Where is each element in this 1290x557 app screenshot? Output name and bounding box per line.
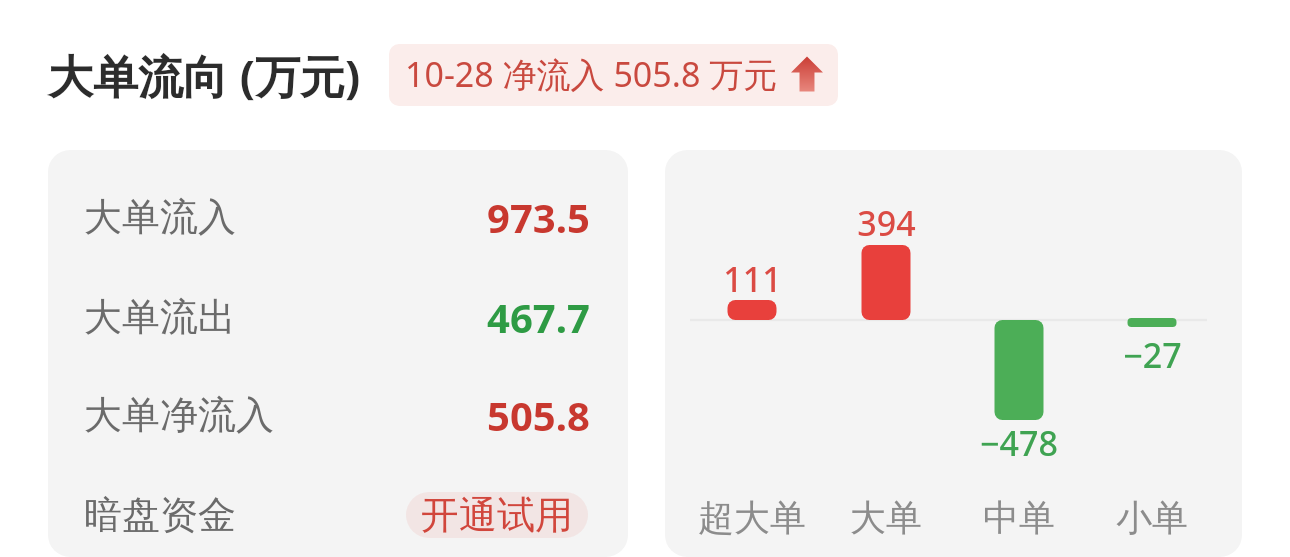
staticText: 大单净流入: [84, 391, 274, 439]
staticText: 10-28 净流入 505.8 万元: [405, 51, 778, 97]
staticText: 467.7: [487, 290, 590, 344]
staticText: 505.8: [487, 388, 590, 442]
button[interactable]: 大单流入: [48, 188, 628, 246]
staticText: 开通试用: [421, 491, 573, 539]
staticText: 大单: [850, 495, 922, 540]
staticText: 大单流出: [84, 293, 236, 341]
staticText: −478: [980, 420, 1058, 466]
button[interactable]: 大单净流入: [48, 386, 628, 444]
staticText: 973.5: [487, 190, 590, 244]
staticText: 小单: [1116, 495, 1188, 540]
staticText: 大单流向 (万元): [48, 45, 361, 106]
staticText: 超大单: [698, 495, 806, 540]
staticText: 暗盘资金: [84, 491, 236, 539]
button[interactable]: 大单流出: [48, 288, 628, 346]
staticText: 394: [857, 200, 916, 246]
button[interactable]: 111: [665, 150, 1242, 557]
staticText: 111: [723, 256, 782, 302]
button[interactable]: 暗盘资金: [48, 486, 628, 544]
other: Net inflow rising: [790, 55, 824, 93]
staticText: 中单: [983, 495, 1055, 540]
staticText: −27: [1123, 332, 1182, 378]
staticText: 大单流入: [84, 193, 236, 241]
button[interactable]: 10-28 净流入 505.8 万元: [389, 44, 838, 106]
